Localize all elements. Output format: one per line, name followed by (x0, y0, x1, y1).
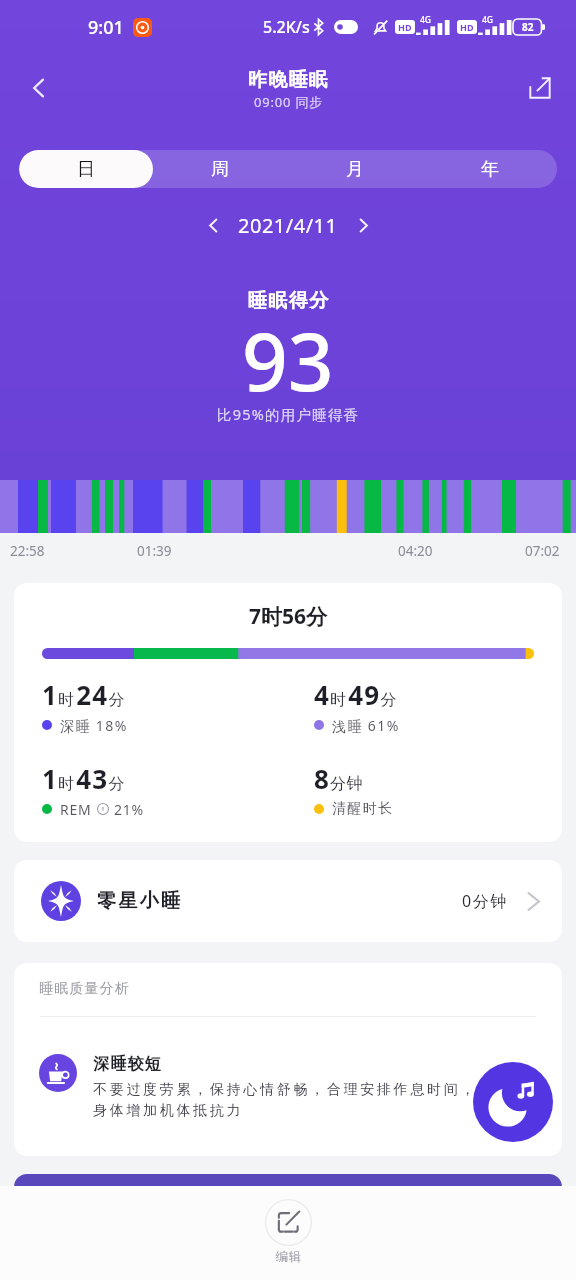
staticText: 不要过度劳累，保持心情舒畅，合理安排作息时间，积极锻炼身体增加机体抵抗力 (93, 1081, 555, 1119)
staticText: 9:01 (88, 15, 124, 40)
staticText: 比95%的用户睡得香 (217, 404, 360, 424)
staticText: 07:02 (525, 542, 560, 560)
staticText: 睡眠得分 (247, 289, 329, 313)
button[interactable]: 年 (422, 150, 557, 188)
button[interactable]: Share (518, 66, 562, 110)
button[interactable]: 月 (287, 150, 422, 188)
button[interactable]: 日 (19, 150, 153, 188)
staticText: 22:58 (10, 542, 45, 560)
staticText: 深睡较短 (93, 1054, 161, 1074)
staticText: 5.2K/s (263, 16, 310, 38)
staticText: 4G (420, 14, 432, 26)
staticText: 月 (346, 158, 364, 181)
button[interactable]: Sleep music (473, 1062, 553, 1142)
staticText: REM (60, 800, 92, 818)
staticText: 日 (77, 158, 95, 181)
staticText: 编辑 (275, 1249, 302, 1265)
staticText: 4G (482, 14, 494, 26)
staticText: 0分钟 (462, 890, 508, 912)
staticText: 21% (114, 800, 145, 818)
button[interactable]: 周 (153, 150, 287, 188)
staticText: 01:39 (137, 542, 172, 560)
staticText: 2021/4/11 (238, 212, 338, 239)
staticText: 09:00 同步 (254, 93, 324, 111)
staticText: 93 (242, 305, 334, 414)
staticText: 1时43分 (42, 761, 127, 796)
staticText: 8分钟 (314, 761, 364, 796)
button[interactable]: Edit (265, 1199, 312, 1265)
button[interactable]: 零星小睡 (14, 860, 562, 942)
staticText: 睡眠质量分析 (39, 980, 131, 998)
button[interactable]: Previous day (196, 208, 230, 242)
staticText: 零星小睡 (97, 889, 183, 913)
staticText: HD (398, 21, 412, 33)
button[interactable]: Next day (346, 208, 380, 242)
staticText: 1时24分 (42, 677, 127, 712)
staticText: 浅睡 61% (332, 716, 400, 734)
staticText: 年 (481, 158, 499, 181)
staticText: 清醒时长 (332, 800, 394, 818)
staticText: 04:20 (398, 542, 433, 560)
staticText: 82 (522, 20, 534, 34)
staticText: 4时49分 (314, 677, 399, 712)
staticText: 周 (211, 158, 229, 181)
staticText: 7时56分 (249, 602, 328, 631)
staticText: 昨晚睡眠 (248, 68, 329, 92)
staticText: 深睡 18% (60, 716, 128, 734)
staticText: HD (460, 21, 474, 33)
button[interactable]: Back (16, 65, 62, 111)
